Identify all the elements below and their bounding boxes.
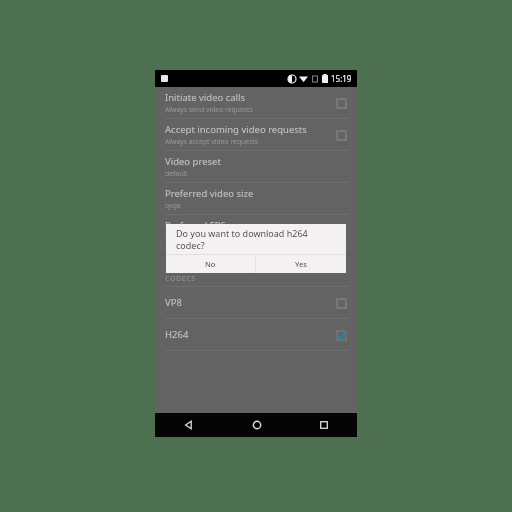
- button[interactable]: VP8: [155, 287, 357, 318]
- button[interactable]: Checked: [334, 328, 348, 342]
- staticText: Do you want to download h264 codec?: [176, 227, 338, 251]
- staticText: 30: [165, 233, 173, 242]
- staticText: 15:19: [331, 73, 352, 84]
- button[interactable]: Recent apps: [290, 413, 357, 437]
- button[interactable]: Unchecked: [334, 128, 348, 142]
- button[interactable]: Unchecked: [334, 96, 348, 110]
- staticText: Preferred FPS: [165, 219, 226, 232]
- staticText: default: [165, 169, 188, 178]
- staticText: Initiate video calls: [165, 91, 246, 104]
- button[interactable]: H264: [155, 319, 357, 350]
- staticText: H264: [165, 328, 334, 341]
- staticText: VP8: [165, 296, 334, 309]
- button[interactable]: Preferred video size: [155, 183, 357, 214]
- staticText: Always accept video requests: [165, 137, 259, 146]
- button[interactable]: Preferred FPS: [155, 215, 357, 246]
- staticText: Yes: [295, 259, 307, 269]
- button[interactable]: Home: [223, 413, 290, 437]
- staticText: CODECS: [165, 274, 196, 284]
- staticText: Preferred video size: [165, 187, 254, 200]
- button[interactable]: Initiate video calls: [155, 87, 357, 118]
- staticText: Video preset: [165, 155, 221, 168]
- staticText: qvga: [165, 201, 181, 210]
- staticText: No: [205, 259, 216, 269]
- button[interactable]: Accept incoming video requests: [155, 119, 357, 150]
- button[interactable]: No: [166, 255, 255, 273]
- button[interactable]: Video preset: [155, 151, 357, 182]
- button[interactable]: Unchecked: [334, 296, 348, 310]
- button[interactable]: Back: [155, 413, 223, 437]
- staticText: Accept incoming video requests: [165, 123, 307, 136]
- button[interactable]: Yes: [256, 255, 346, 273]
- staticText: Always send video requests: [165, 105, 253, 114]
